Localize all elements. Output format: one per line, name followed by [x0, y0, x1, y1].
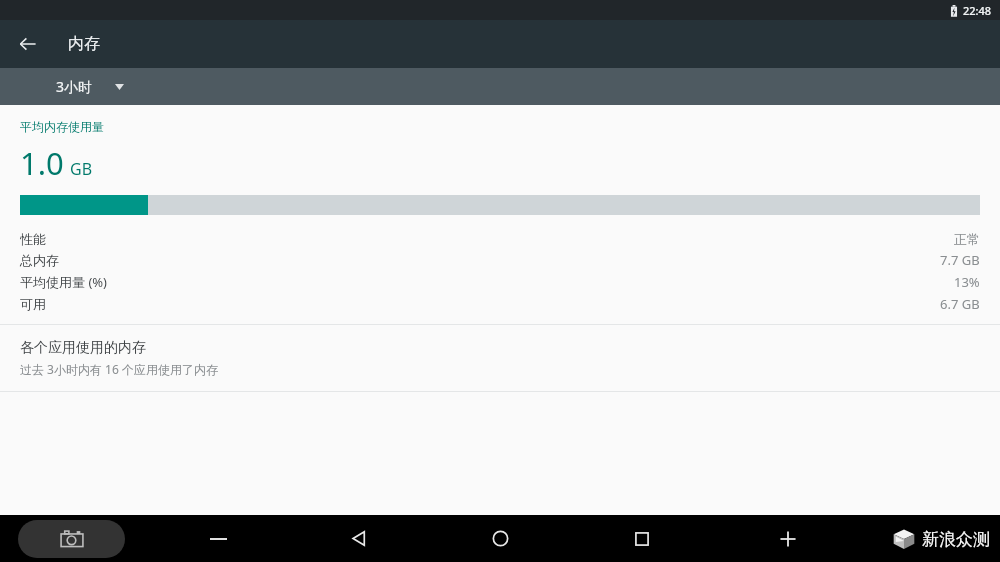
- staticText: 可用: [20, 296, 46, 312]
- staticText: 过去 3小时内有 16 个应用使用了内存: [20, 361, 218, 377]
- button[interactable]: Recent apps: [619, 515, 665, 562]
- button[interactable]: 平均使用量 (%): [0, 271, 1000, 293]
- staticText: 6.7 GB: [940, 295, 980, 313]
- button[interactable]: Back: [8, 24, 48, 64]
- staticText: 性能: [20, 231, 46, 247]
- staticText: 7.7 GB: [940, 251, 980, 269]
- button[interactable]: Home: [477, 515, 523, 562]
- button[interactable]: Camera: [18, 520, 125, 558]
- staticText: 正常: [954, 231, 980, 247]
- staticText: 各个应用使用的内存: [20, 339, 146, 357]
- staticText: 平均使用量 (%): [20, 273, 107, 291]
- button[interactable]: Back: [335, 515, 381, 562]
- button[interactable]: Add: [765, 515, 811, 562]
- button[interactable]: 3小时: [52, 71, 128, 102]
- button[interactable]: Hide: [195, 515, 241, 562]
- staticText: GB: [70, 158, 93, 180]
- staticText: 平均内存使用量: [20, 119, 104, 134]
- staticText: 3小时: [56, 77, 93, 96]
- staticText: 13%: [954, 273, 980, 291]
- staticText: 内存: [68, 34, 100, 54]
- staticText: 新浪众测: [922, 529, 990, 550]
- button[interactable]: 总内存: [0, 249, 1000, 271]
- staticText: 总内存: [20, 252, 59, 268]
- button[interactable]: 各个应用使用的内存: [0, 325, 1000, 391]
- button[interactable]: 可用: [0, 293, 1000, 315]
- staticText: 22:48: [963, 3, 992, 18]
- button[interactable]: 性能: [0, 229, 1000, 249]
- staticText: 1.0: [20, 142, 64, 184]
